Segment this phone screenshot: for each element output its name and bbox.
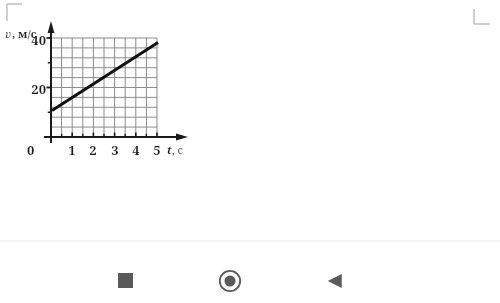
- staticText: , м/с: [12, 26, 37, 41]
- staticText: t: [167, 142, 172, 157]
- staticText: 2: [89, 141, 97, 159]
- staticText: 40: [31, 31, 46, 49]
- staticText: 3: [111, 141, 119, 159]
- button[interactable]: Back: [310, 258, 360, 303]
- staticText: 20: [31, 80, 46, 98]
- staticText: , c: [172, 142, 184, 157]
- button[interactable]: Recent apps: [100, 258, 150, 303]
- staticText: 4: [132, 141, 140, 159]
- staticText: 1: [68, 141, 76, 159]
- staticText: 0: [27, 141, 35, 159]
- staticText: υ: [5, 26, 12, 41]
- staticText: 5: [153, 141, 161, 159]
- button[interactable]: Home: [205, 258, 255, 303]
